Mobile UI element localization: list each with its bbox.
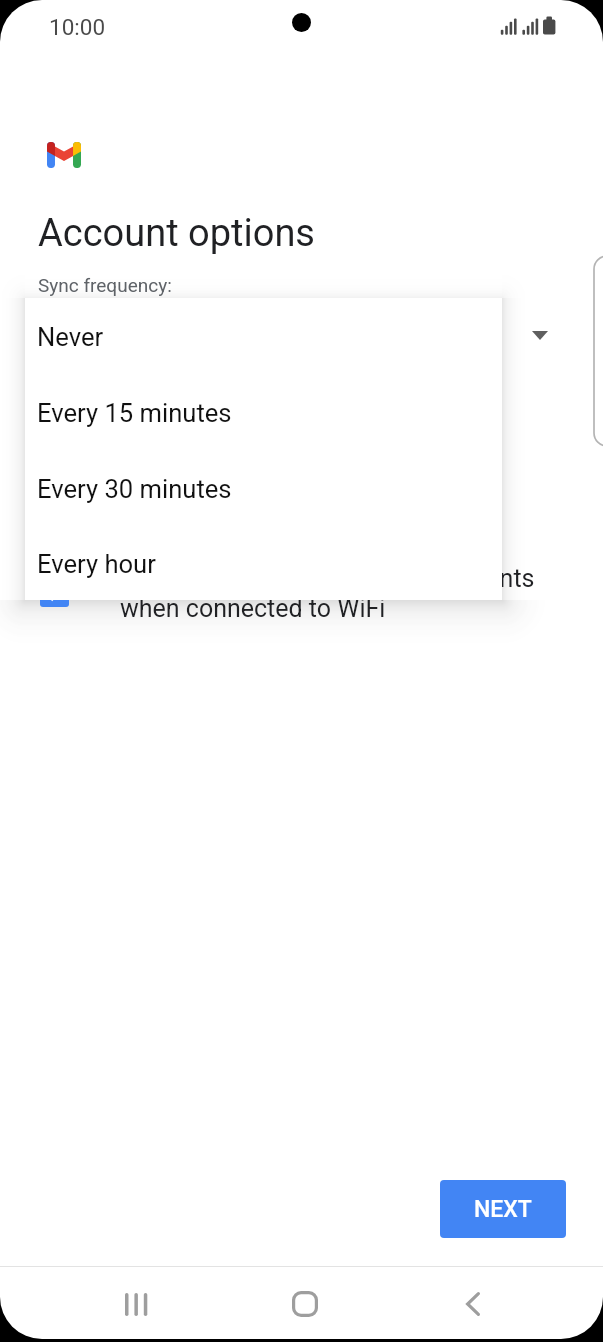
button[interactable]: Notify me when email arrives xyxy=(30,396,560,454)
button[interactable]: Sync email from this account xyxy=(30,476,560,534)
staticText: 10:00 xyxy=(49,14,106,40)
staticText: Account options xyxy=(38,211,315,256)
staticText: Sync email from this account xyxy=(120,490,444,519)
staticText: NEXT xyxy=(474,1196,532,1223)
staticText: Every 30 minutes xyxy=(37,474,232,504)
button[interactable]: Home xyxy=(265,1267,345,1339)
button[interactable]: Every hour xyxy=(25,526,502,600)
staticText: Automatically download attachments xyxy=(120,564,535,593)
button[interactable]: Back xyxy=(433,1267,513,1339)
button[interactable]: Recent apps xyxy=(96,1267,176,1339)
button[interactable]: Automatically download attachments xyxy=(30,556,560,644)
button[interactable]: Sync frequency xyxy=(30,300,560,370)
button[interactable]: Every 30 minutes xyxy=(25,450,502,526)
button[interactable]: Never xyxy=(25,298,502,374)
button[interactable]: NEXT xyxy=(440,1180,566,1238)
staticText: Never xyxy=(37,322,104,352)
staticText: when connected to WiFi xyxy=(120,594,386,623)
staticText: Sync frequency: xyxy=(38,274,172,296)
staticText: Every hour xyxy=(37,549,156,579)
staticText: Every 15 minutes xyxy=(37,398,232,428)
button[interactable]: Every 15 minutes xyxy=(25,374,502,450)
staticText: Notify me when email arrives xyxy=(120,410,443,439)
staticText: Never xyxy=(39,321,104,350)
